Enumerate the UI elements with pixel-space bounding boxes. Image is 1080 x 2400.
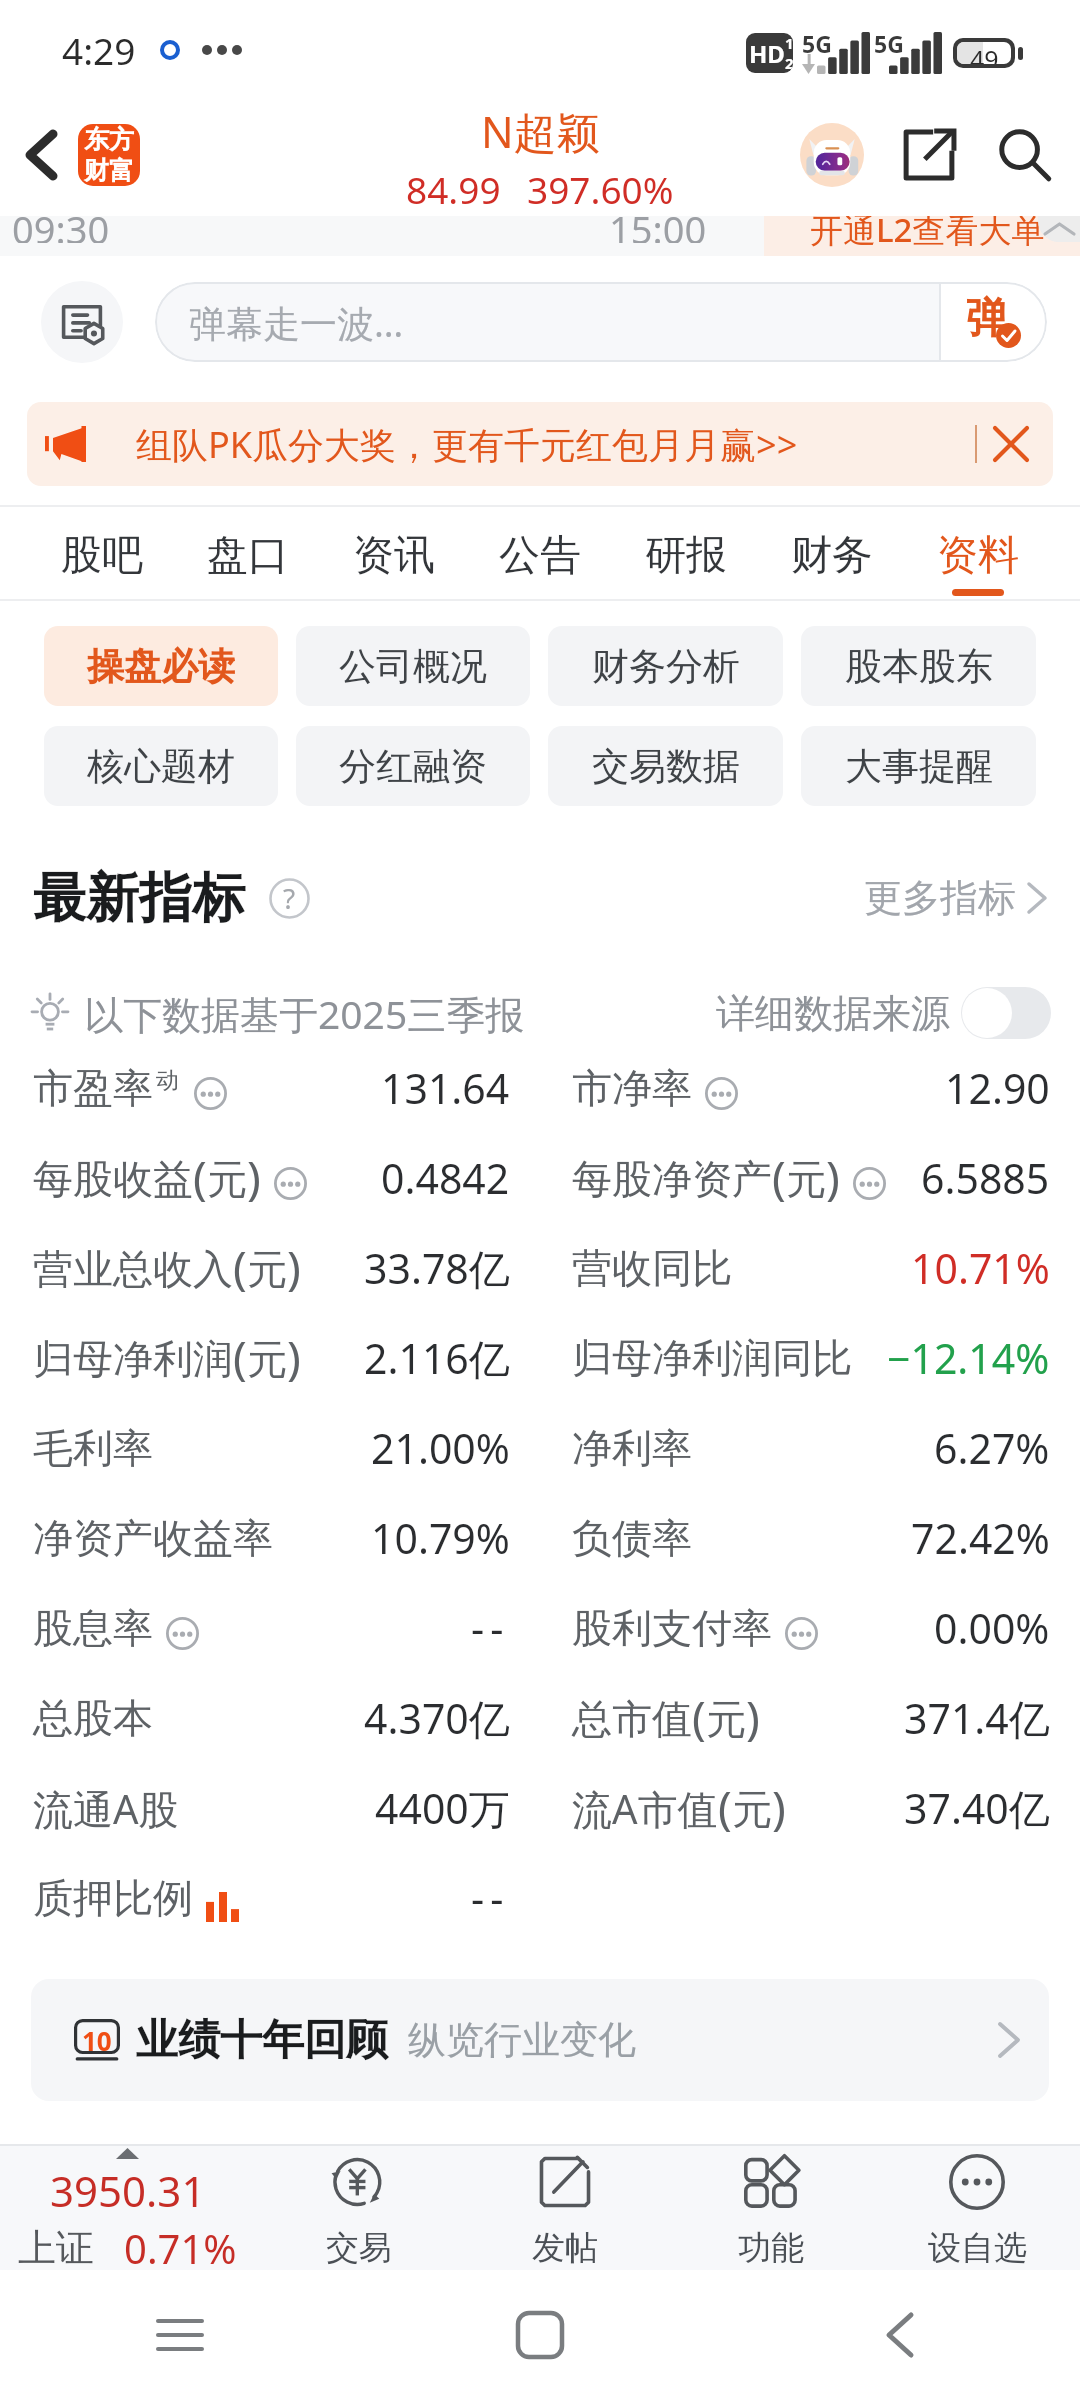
staticText: 组队PK瓜分大奖，更有千元红包月月赢>>	[136, 420, 798, 469]
button[interactable]: 财务分析	[548, 626, 783, 706]
button[interactable]: Home	[360, 2270, 720, 2400]
button[interactable]: 10	[31, 1979, 1049, 2101]
button[interactable]: Back	[2, 100, 80, 210]
button[interactable]: 核心题材	[44, 726, 278, 806]
staticText: 3950.31	[50, 2162, 206, 2219]
staticText: 397.60%	[527, 164, 674, 212]
button[interactable]: Notes	[41, 281, 123, 363]
staticText: 市盈率	[33, 1063, 153, 1113]
staticText: )	[287, 1236, 301, 1299]
staticText: 股息率	[33, 1603, 153, 1653]
staticText: 5G	[802, 28, 832, 59]
staticText: 每股净资产	[572, 1154, 772, 1204]
staticText: 发帖	[532, 2227, 598, 2269]
button[interactable]: Back	[720, 2270, 1080, 2400]
button[interactable]: 盘口	[175, 505, 321, 601]
staticText: 1	[785, 33, 793, 53]
staticText: 5G	[874, 28, 904, 59]
staticText: 动	[156, 1066, 179, 1095]
staticText: 开通L2查看大单	[810, 216, 1045, 247]
staticText: HD	[749, 37, 785, 70]
staticText: (	[233, 1236, 247, 1299]
staticText: )	[247, 1146, 261, 1209]
button[interactable]: Search	[997, 127, 1053, 183]
button[interactable]: 发帖	[462, 2146, 668, 2277]
staticText: 37.40亿	[904, 1780, 1050, 1836]
staticText: 2	[785, 53, 793, 73]
staticText: 10.71%	[911, 1240, 1050, 1296]
button[interactable]: 组队PK瓜分大奖，更有千元红包月月赢>>	[27, 402, 1053, 486]
button[interactable]: East Money	[78, 124, 140, 186]
button[interactable]: Help	[267, 876, 311, 920]
staticText: 弹幕走一波…	[189, 297, 404, 348]
button[interactable]: 资料	[905, 505, 1051, 601]
staticText: 营收同比	[572, 1243, 732, 1293]
staticText: 设自选	[928, 2227, 1027, 2269]
staticText: )	[746, 1686, 760, 1749]
staticText: --	[471, 1600, 510, 1656]
staticText: 6.27%	[934, 1420, 1050, 1476]
button[interactable]: 操盘必读	[44, 626, 278, 706]
button[interactable]: 交易数据	[548, 726, 783, 806]
staticText: 元	[247, 1334, 287, 1384]
staticText: 4:29	[62, 25, 136, 75]
staticText: 弹	[966, 292, 1008, 345]
staticText: 操盘必读	[87, 643, 235, 690]
staticText: N超颖	[481, 102, 600, 161]
staticText: 以下数据基于2025三季报	[84, 987, 525, 1040]
staticText: 归母净利润同比	[572, 1333, 852, 1383]
staticText: 131.64	[381, 1060, 510, 1116]
staticText: 净资产收益率	[33, 1513, 273, 1563]
button[interactable]: Close	[988, 421, 1034, 467]
staticText: 纵览行业变化	[408, 2016, 636, 2064]
staticText: )	[826, 1146, 840, 1209]
button[interactable]: Recents	[0, 2270, 360, 2400]
button[interactable]: 股吧	[29, 505, 175, 601]
staticText: 股吧	[61, 530, 143, 582]
staticText: 分红融资	[339, 743, 487, 790]
button[interactable]: 设自选	[874, 2146, 1080, 2277]
staticText: 元	[732, 1784, 772, 1834]
button[interactable]: 大事提醒	[801, 726, 1036, 806]
staticText: 业绩十年回顾	[136, 2014, 388, 2067]
button[interactable]: 研报	[613, 505, 759, 601]
staticText: 12.90	[945, 1060, 1050, 1116]
staticText: (	[718, 1776, 732, 1839]
staticText: 流通A股	[33, 1781, 179, 1836]
button[interactable]: 开通L2查看大单	[764, 216, 1080, 256]
staticText: 公司概况	[339, 643, 487, 690]
button[interactable]: AI assistant	[800, 123, 864, 187]
button[interactable]: 公司概况	[296, 626, 530, 706]
staticText: (	[772, 1146, 786, 1209]
button[interactable]: 3950.31	[0, 2146, 255, 2277]
button[interactable]: 交易	[255, 2146, 462, 2277]
button[interactable]: 分红融资	[296, 726, 530, 806]
staticText: 详细数据来源	[716, 989, 950, 1038]
button[interactable]: 公告	[467, 505, 613, 601]
button[interactable]: 股本股东	[801, 626, 1036, 706]
staticText: 49	[970, 42, 999, 64]
button[interactable]: 弹幕走一波…	[155, 282, 1047, 362]
staticText: 净利率	[572, 1423, 692, 1473]
button[interactable]: 资讯	[321, 505, 467, 601]
staticText: 资料	[937, 530, 1019, 582]
staticText: 大事提醒	[845, 743, 993, 790]
staticText: 股本股东	[845, 643, 993, 690]
button[interactable]: Toggle detailed data source	[961, 987, 1051, 1039]
staticText: 15:00	[609, 216, 707, 243]
staticText: (	[193, 1146, 207, 1209]
staticText: 21.00%	[371, 1420, 510, 1476]
staticText: 负债率	[572, 1513, 692, 1563]
staticText: 东方	[84, 124, 134, 155]
button[interactable]: 更多指标	[858, 868, 1052, 928]
staticText: 更多指标	[864, 874, 1016, 922]
button[interactable]: Collapse	[1038, 216, 1080, 242]
button[interactable]: 功能	[668, 2146, 874, 2277]
staticText: 上证	[18, 2224, 94, 2272]
staticText: −12.14%	[887, 1330, 1050, 1386]
button[interactable]: Share	[899, 125, 959, 185]
staticText: 0.4842	[381, 1150, 510, 1206]
staticText: 市净率	[572, 1063, 692, 1113]
staticText: 371.4亿	[904, 1690, 1050, 1746]
button[interactable]: 财务	[759, 505, 905, 601]
